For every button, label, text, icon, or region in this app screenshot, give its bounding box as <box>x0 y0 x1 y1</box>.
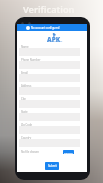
button[interactable]: Email <box>17 71 87 84</box>
button[interactable]: Address <box>17 84 87 97</box>
button[interactable]: Account status <box>17 24 87 31</box>
staticText: Phone Number <box>21 58 41 61</box>
staticText: Verification <box>23 3 75 16</box>
staticText: Email <box>21 71 28 74</box>
staticText: Name <box>21 45 29 48</box>
staticText: smart solutions <box>47 40 63 43</box>
button[interactable]: City <box>17 97 87 110</box>
staticText: Browse <box>64 151 73 154</box>
staticText: APK <box>47 35 61 44</box>
staticText: State <box>21 110 28 113</box>
staticText: Submit <box>48 164 57 168</box>
button[interactable]: Phone Number <box>17 58 87 71</box>
staticText: No file chosen <box>21 150 39 154</box>
staticText: Country <box>21 136 32 139</box>
staticText: City <box>21 97 26 100</box>
button[interactable]: Name <box>17 45 87 58</box>
button[interactable]: Browse <box>63 150 74 154</box>
other: Account status <box>26 26 30 30</box>
staticText: No account configured <box>31 26 60 30</box>
staticText: Address <box>21 84 32 87</box>
button[interactable]: Country <box>17 136 87 149</box>
button[interactable]: State <box>17 110 87 123</box>
button[interactable]: Zip Code <box>17 123 87 136</box>
button[interactable]: Submit <box>45 162 59 170</box>
staticText: Zip Code <box>21 123 33 126</box>
